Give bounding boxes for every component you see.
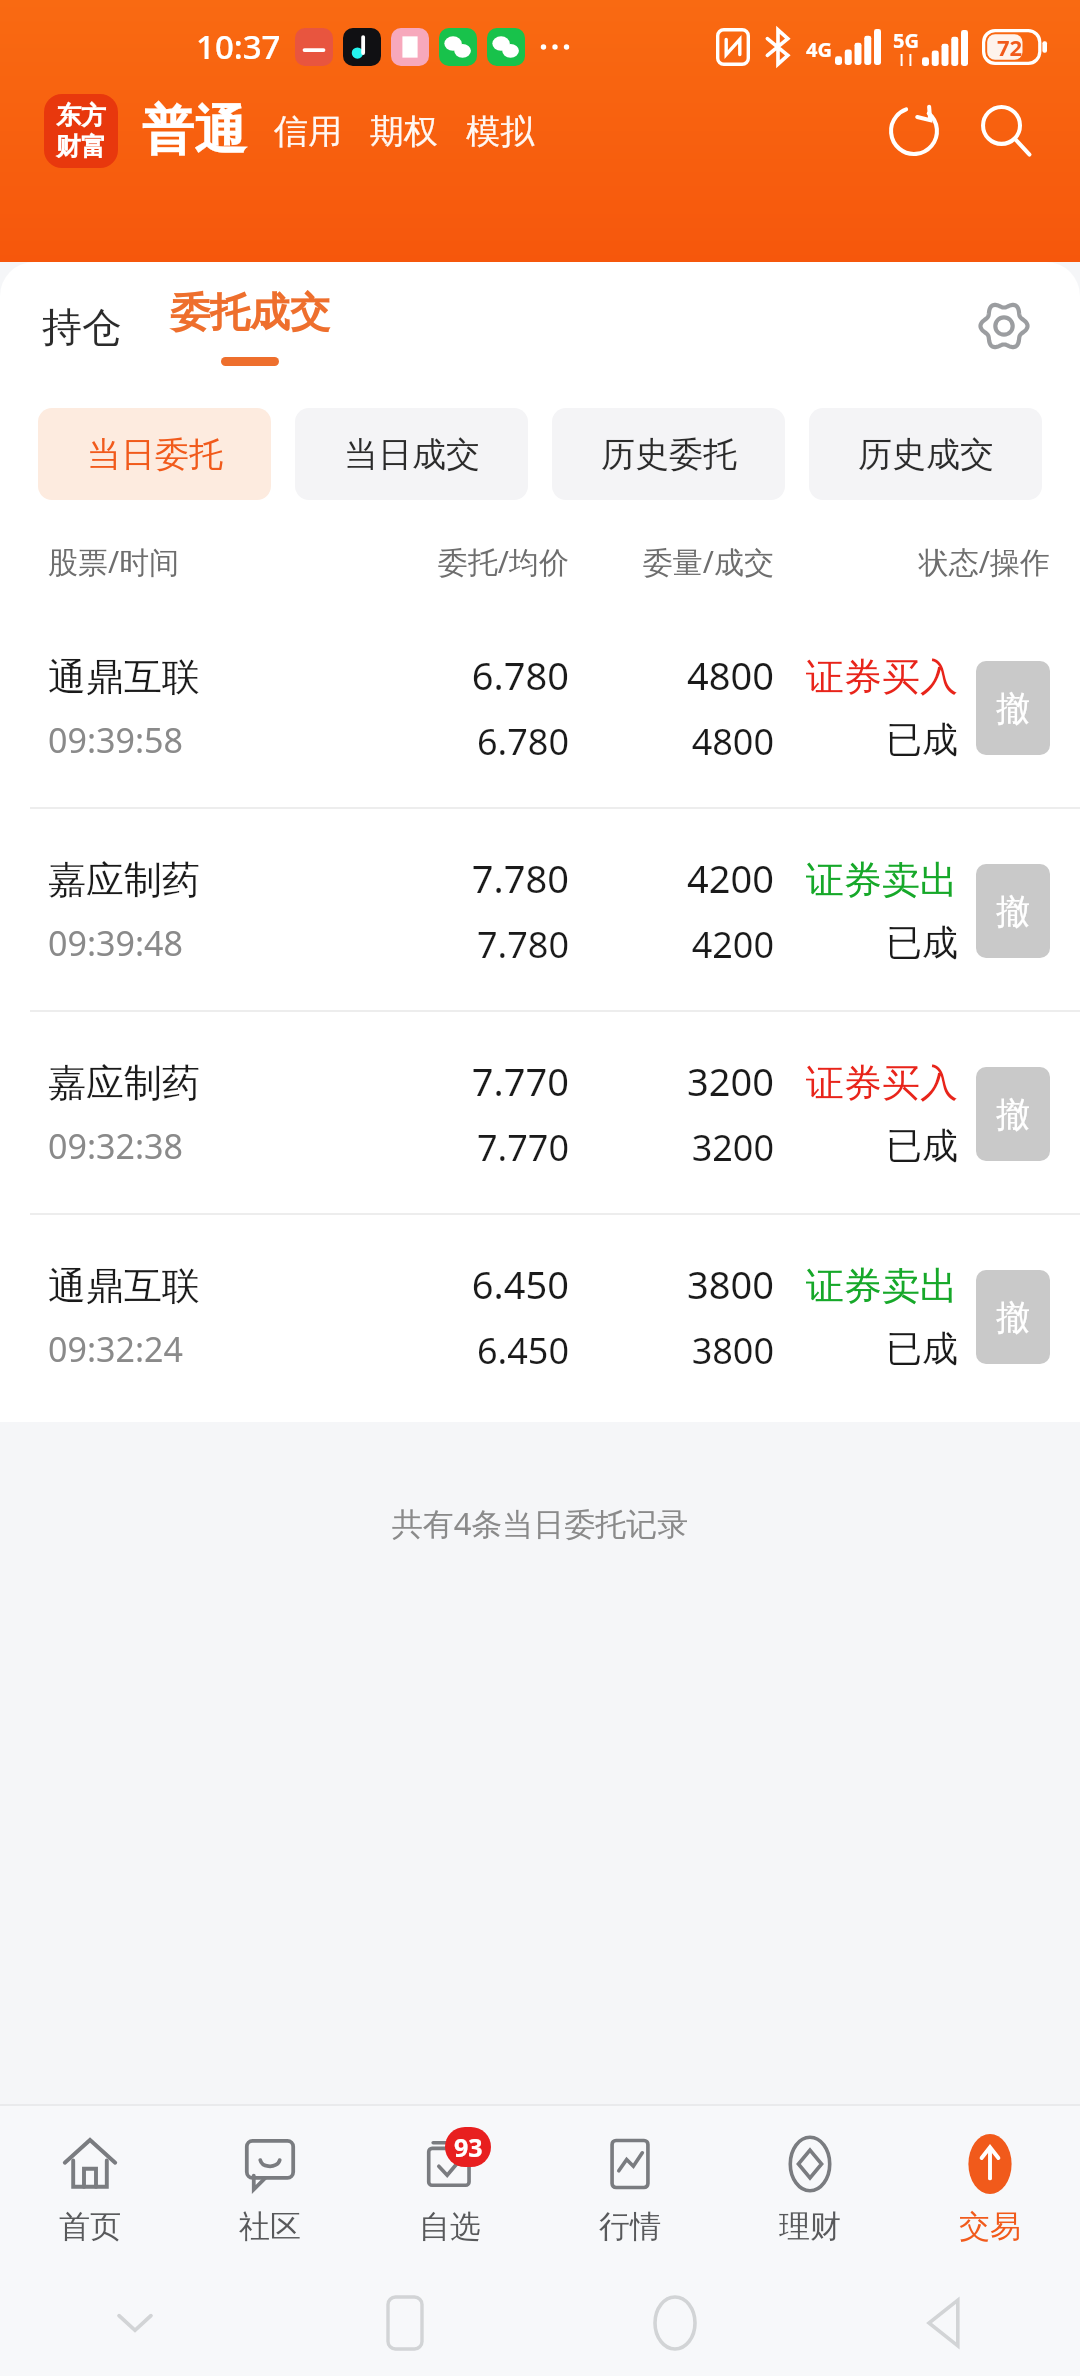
- staticText: 3200: [569, 1123, 774, 1172]
- staticText: 6.780: [344, 649, 569, 701]
- staticText: 5G: [893, 27, 919, 54]
- staticText: 4G: [806, 36, 832, 63]
- staticText: 撤: [996, 1296, 1030, 1339]
- staticText: 证券买入: [806, 1059, 958, 1107]
- staticText: 已成: [886, 1326, 958, 1371]
- staticText: 状态/操作: [774, 541, 1050, 582]
- staticText: 普通: [142, 98, 246, 164]
- button[interactable]: 行情: [540, 2106, 720, 2270]
- button[interactable]: 通鼎互联: [0, 606, 1080, 809]
- button[interactable]: 历史成交: [809, 408, 1042, 500]
- staticText: 嘉应制药: [48, 1059, 200, 1107]
- staticText: 社区: [239, 2207, 301, 2246]
- button[interactable]: 撤: [976, 1270, 1050, 1364]
- button[interactable]: Settings: [964, 286, 1044, 366]
- staticText: 理财: [779, 2207, 841, 2246]
- staticText: 嘉应制药: [48, 856, 200, 904]
- button[interactable]: Refresh: [868, 92, 960, 170]
- staticText: 委托成交: [170, 287, 330, 337]
- button[interactable]: 理财: [720, 2106, 900, 2270]
- staticText: 撤: [996, 1093, 1030, 1136]
- staticText: 东方: [56, 100, 106, 131]
- button[interactable]: 当日成交: [295, 408, 528, 500]
- button[interactable]: 93: [360, 2106, 540, 2270]
- button[interactable]: 社区: [180, 2106, 360, 2270]
- staticText: 当日成交: [344, 433, 480, 476]
- button[interactable]: 普通: [142, 98, 246, 164]
- button[interactable]: 嘉应制药: [0, 1012, 1080, 1215]
- staticText: 委托/均价: [344, 541, 569, 582]
- staticText: 持仓: [42, 302, 122, 352]
- staticText: 09:39:58: [48, 717, 183, 763]
- staticText: 6.780: [344, 717, 569, 766]
- button[interactable]: 东方: [44, 94, 118, 168]
- button[interactable]: 委托成交: [170, 287, 330, 366]
- staticText: 行情: [599, 2207, 661, 2246]
- staticText: 09:32:24: [48, 1326, 183, 1372]
- button[interactable]: 信用: [274, 110, 342, 153]
- staticText: 当日委托: [87, 433, 223, 476]
- button[interactable]: 通鼎互联: [0, 1215, 1080, 1418]
- staticText: 证券卖出: [806, 856, 958, 904]
- staticText: 已成: [886, 1123, 958, 1168]
- staticText: 期权: [370, 110, 438, 153]
- staticText: 6.450: [344, 1258, 569, 1310]
- button[interactable]: 撤: [976, 661, 1050, 755]
- staticText: 7.780: [344, 852, 569, 904]
- staticText: 6.450: [344, 1326, 569, 1375]
- staticText: 撤: [996, 890, 1030, 933]
- button[interactable]: 首页: [0, 2106, 180, 2270]
- staticText: 委量/成交: [569, 541, 774, 582]
- staticText: 已成: [886, 717, 958, 762]
- staticText: 历史成交: [858, 433, 994, 476]
- staticText: 首页: [59, 2207, 121, 2246]
- button[interactable]: 撤: [976, 1067, 1050, 1161]
- staticText: 交易: [959, 2207, 1021, 2246]
- staticText: 股票/时间: [48, 541, 344, 582]
- staticText: 证券买入: [806, 653, 958, 701]
- button[interactable]: 历史委托: [552, 408, 785, 500]
- button[interactable]: 模拟: [466, 110, 534, 153]
- staticText: 10:37: [196, 24, 281, 69]
- staticText: 通鼎互联: [48, 1262, 200, 1310]
- button[interactable]: Search: [960, 92, 1052, 170]
- button[interactable]: 嘉应制药: [0, 809, 1080, 1012]
- staticText: 4200: [569, 852, 774, 904]
- staticText: 7.770: [344, 1055, 569, 1107]
- button[interactable]: 当日委托: [38, 408, 271, 500]
- staticText: 4200: [569, 920, 774, 969]
- staticText: 3800: [569, 1258, 774, 1310]
- staticText: 历史委托: [601, 433, 737, 476]
- staticText: 3200: [569, 1055, 774, 1107]
- staticText: 已成: [886, 920, 958, 965]
- staticText: 证券卖出: [806, 1262, 958, 1310]
- staticText: 财富: [56, 131, 106, 162]
- staticText: 4800: [569, 717, 774, 766]
- staticText: 7.780: [344, 920, 569, 969]
- staticText: 09:39:48: [48, 920, 183, 966]
- staticText: 信用: [274, 110, 342, 153]
- staticText: 自选: [419, 2207, 481, 2246]
- staticText: 09:32:38: [48, 1123, 183, 1169]
- button[interactable]: 期权: [370, 110, 438, 153]
- staticText: 通鼎互联: [48, 653, 200, 701]
- staticText: 模拟: [466, 110, 534, 153]
- staticText: 撤: [996, 687, 1030, 730]
- staticText: 3800: [569, 1326, 774, 1375]
- staticText: 共有4条当日委托记录: [0, 1502, 1080, 1544]
- button[interactable]: 撤: [976, 864, 1050, 958]
- staticText: 7.770: [344, 1123, 569, 1172]
- button[interactable]: 持仓: [42, 302, 122, 352]
- staticText: 4800: [569, 649, 774, 701]
- button[interactable]: 交易: [900, 2106, 1080, 2270]
- staticText: 93: [454, 2130, 483, 2164]
- staticText: 72: [997, 32, 1023, 62]
